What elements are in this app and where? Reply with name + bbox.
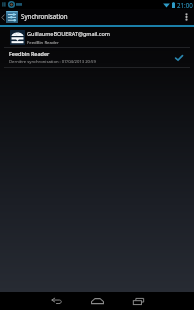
button[interactable]: Feedbin Reader <box>0 48 194 67</box>
staticText: Dernière synchronisation : 07/04/2013 20… <box>9 59 96 65</box>
staticText: Synchronisation <box>21 12 68 20</box>
button[interactable]: Navigate up <box>0 9 19 25</box>
staticText: FeedBin Reader <box>27 39 59 45</box>
button[interactable]: GuillaumeBOUERAT@gmail.com <box>0 27 194 47</box>
button[interactable]: Recent apps <box>118 292 159 310</box>
button[interactable]: Home <box>77 292 118 310</box>
staticText: Feedbin Reader <box>9 50 50 57</box>
button[interactable]: Back <box>36 292 77 310</box>
staticText: GuillaumeBOUERAT@gmail.com <box>27 30 110 37</box>
staticText: 21:00 <box>177 1 193 9</box>
button[interactable]: More options <box>178 9 194 25</box>
